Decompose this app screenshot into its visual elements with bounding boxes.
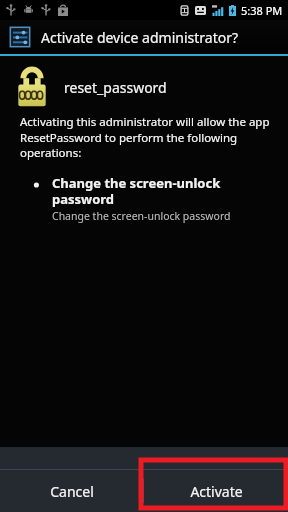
staticText: Activating this administrator will allow… bbox=[20, 114, 270, 160]
button[interactable]: Activate bbox=[144, 470, 288, 512]
staticText: reset_password bbox=[64, 78, 167, 97]
staticText: Activate device administrator? bbox=[41, 28, 239, 47]
staticText: Activate bbox=[190, 482, 243, 501]
button[interactable]: Cancel bbox=[0, 470, 143, 512]
staticText: Change the screen-unlock password bbox=[52, 174, 221, 207]
other: Activate highlight bbox=[139, 458, 288, 510]
staticText: Cancel bbox=[50, 482, 94, 501]
staticText: Change the screen-unlock password bbox=[52, 209, 231, 223]
staticText: 5:38 PM bbox=[241, 3, 283, 18]
